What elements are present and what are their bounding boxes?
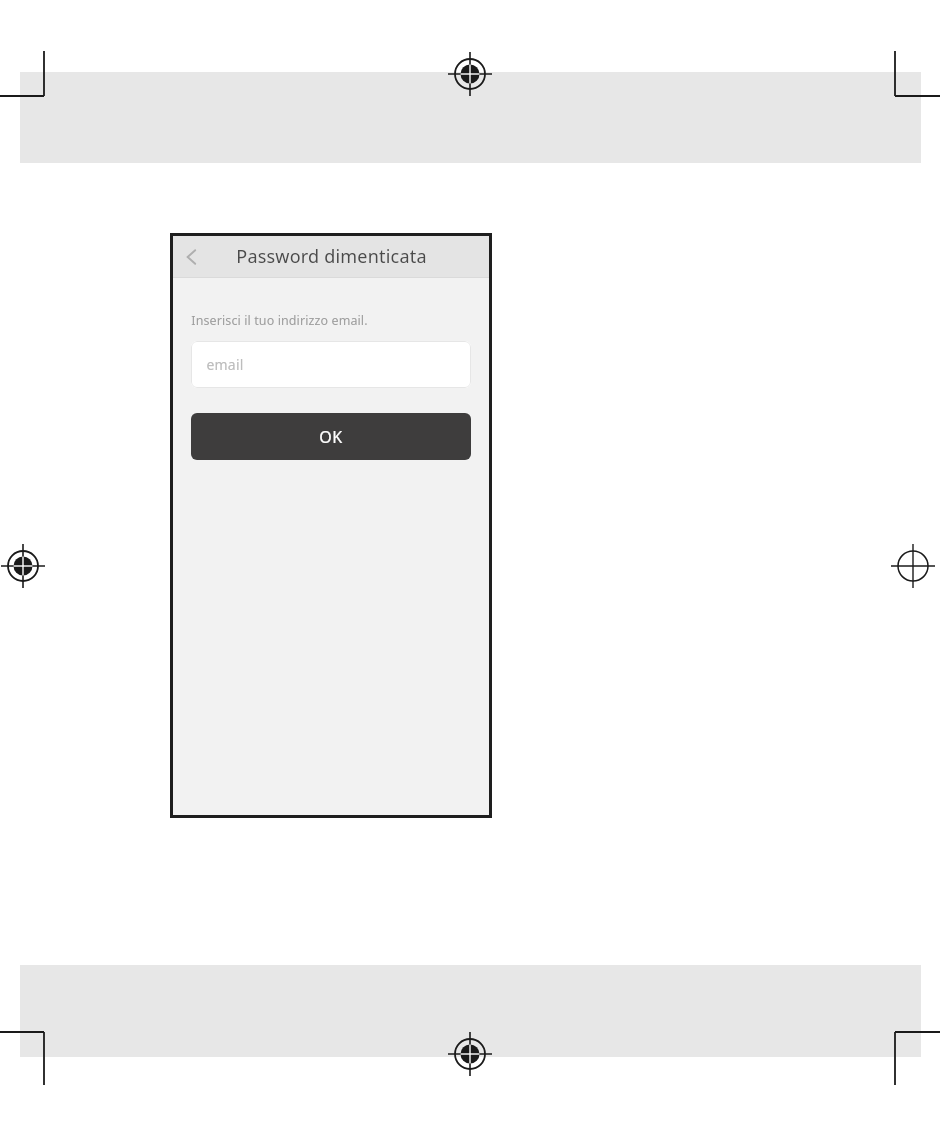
staticText: Password dimenticata: [236, 244, 427, 269]
button[interactable]: OK: [191, 413, 471, 460]
staticText: Inserisci il tuo indirizzo email.: [191, 312, 368, 329]
staticText: email: [206, 355, 244, 374]
button[interactable]: email: [191, 341, 471, 388]
staticText: OK: [319, 426, 343, 448]
button[interactable]: Back: [173, 236, 209, 277]
